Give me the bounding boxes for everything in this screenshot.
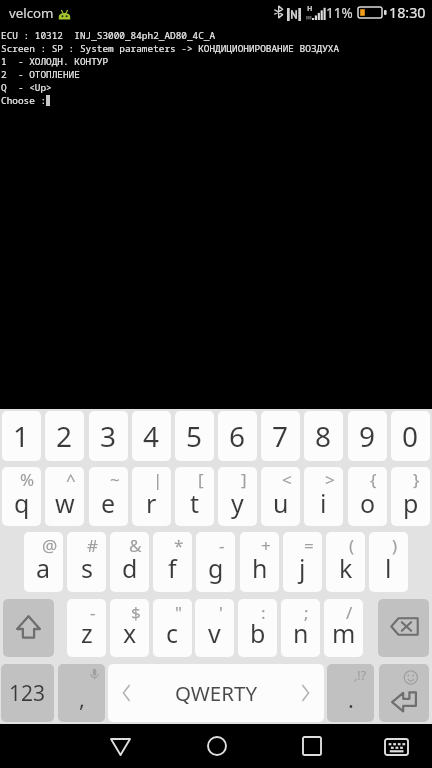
staticText: u	[273, 486, 289, 520]
button[interactable]: 6	[218, 411, 257, 461]
staticText: |	[153, 468, 163, 491]
staticText: H	[307, 3, 313, 13]
staticText: 123	[9, 679, 46, 708]
button[interactable]: Shift	[3, 599, 54, 657]
staticText: +	[261, 534, 271, 557]
button[interactable]: =	[283, 532, 322, 592]
button[interactable]: 1	[2, 411, 41, 461]
button[interactable]: QWERTY	[108, 664, 324, 722]
button[interactable]: ,	[58, 664, 105, 722]
button[interactable]: &	[110, 532, 149, 592]
staticText: k	[339, 551, 353, 585]
button[interactable]: [	[175, 467, 214, 526]
button[interactable]: ~	[89, 467, 128, 526]
button[interactable]: 3	[89, 411, 128, 461]
staticText: o	[360, 486, 376, 520]
button[interactable]: >	[304, 467, 343, 526]
button[interactable]: -	[196, 532, 235, 592]
staticText: q	[14, 486, 30, 520]
staticText: d	[122, 551, 138, 585]
staticText: 1	[13, 417, 30, 455]
staticText: {	[370, 468, 377, 491]
staticText: f	[168, 551, 177, 585]
staticText: '	[219, 601, 223, 624]
staticText: =	[304, 534, 314, 557]
staticText: ]	[241, 468, 247, 491]
staticText: 3	[100, 417, 117, 455]
button[interactable]: Recents	[288, 724, 336, 768]
button[interactable]: :	[238, 599, 277, 657]
staticText: Choose :	[1, 94, 47, 107]
staticText: h	[252, 551, 268, 585]
staticText: 5	[186, 417, 203, 455]
button[interactable]: )	[369, 532, 408, 592]
staticText: ~	[110, 468, 120, 491]
staticText: c	[166, 616, 179, 650]
staticText: (	[349, 534, 355, 557]
button[interactable]: Home	[193, 724, 241, 768]
staticText: 0	[402, 417, 419, 455]
button[interactable]: 0	[391, 411, 430, 461]
staticText: &	[129, 534, 142, 557]
staticText: ,!?	[354, 667, 367, 684]
staticText: 7	[272, 417, 289, 455]
staticText: i	[320, 486, 327, 520]
button[interactable]: *	[153, 532, 192, 592]
button[interactable]: Enter	[379, 664, 429, 722]
button[interactable]: 5	[175, 411, 214, 461]
staticText: )	[392, 534, 398, 557]
button[interactable]: (	[326, 532, 365, 592]
staticText: 9	[359, 417, 376, 455]
button[interactable]: {	[348, 467, 387, 526]
button[interactable]: 123	[1, 664, 54, 722]
button[interactable]: 2	[45, 411, 84, 461]
staticText: x	[123, 616, 137, 650]
staticText: }	[413, 468, 420, 491]
button[interactable]: 8	[304, 411, 343, 461]
button[interactable]: /	[324, 599, 363, 657]
button[interactable]: $	[110, 599, 149, 657]
staticText: *	[174, 534, 184, 557]
staticText: [	[198, 468, 204, 491]
button[interactable]: %	[2, 467, 41, 526]
button[interactable]: ;	[281, 599, 320, 657]
button[interactable]: "	[153, 599, 192, 657]
staticText: t	[190, 486, 200, 520]
button[interactable]: '	[195, 599, 234, 657]
staticText: r	[146, 486, 157, 520]
staticText: @	[42, 534, 58, 557]
button[interactable]: @	[24, 532, 63, 592]
staticText: velcom	[9, 4, 54, 22]
staticText: n	[293, 616, 309, 650]
button[interactable]: -	[67, 599, 106, 657]
button[interactable]: #	[67, 532, 106, 592]
staticText: m	[332, 616, 356, 650]
button[interactable]: Back	[96, 724, 144, 768]
staticText: ^	[66, 468, 76, 491]
button[interactable]: ^	[45, 467, 84, 526]
button[interactable]: Hide keyboard	[372, 724, 420, 768]
staticText: 1 - ХОЛОДН. КОНТУР	[1, 55, 109, 68]
button[interactable]: |	[132, 467, 171, 526]
staticText: e	[101, 486, 116, 520]
button[interactable]: 7	[261, 411, 300, 461]
button[interactable]: 4	[132, 411, 171, 461]
staticText: :	[261, 601, 266, 624]
staticText: z	[81, 616, 93, 650]
staticText: ;	[304, 601, 309, 624]
button[interactable]: ]	[218, 467, 257, 526]
button[interactable]: }	[391, 467, 430, 526]
button[interactable]: 9	[348, 411, 387, 461]
staticText: -	[219, 534, 225, 557]
button[interactable]: +	[240, 532, 279, 592]
staticText: "	[175, 601, 182, 624]
button[interactable]: ,!?	[327, 664, 374, 722]
staticText: 4	[143, 417, 160, 455]
staticText: j	[299, 551, 306, 585]
staticText: a	[36, 551, 51, 585]
button[interactable]: <	[261, 467, 300, 526]
staticText: QWERTY	[175, 679, 258, 707]
button[interactable]: Backspace	[378, 599, 429, 657]
staticText: 18:30	[389, 3, 426, 22]
staticText: ECU : 10312 INJ_S3000_84ph2_AD80_4C_A	[1, 29, 216, 42]
